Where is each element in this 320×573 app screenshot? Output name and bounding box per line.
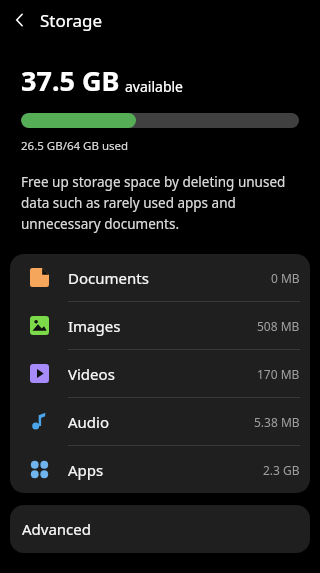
staticText: available bbox=[125, 77, 184, 96]
button[interactable]: Documents bbox=[10, 254, 310, 302]
button[interactable]: Videos bbox=[10, 350, 310, 398]
button[interactable]: Images bbox=[10, 302, 310, 350]
staticText: 2.3 GB bbox=[263, 462, 300, 478]
button[interactable]: Audio bbox=[10, 398, 310, 446]
staticText: 26.5 GB/64 GB used bbox=[21, 138, 129, 154]
staticText: Advanced bbox=[22, 519, 92, 539]
staticText: Images bbox=[68, 316, 121, 336]
button[interactable]: Back bbox=[0, 0, 40, 40]
staticText: 37.5 GB bbox=[21, 62, 120, 99]
staticText: Documents bbox=[68, 268, 149, 288]
staticText: Free up storage space by deleting unused… bbox=[21, 173, 300, 233]
button[interactable]: Advanced bbox=[10, 505, 310, 553]
button[interactable]: Apps bbox=[10, 446, 310, 493]
staticText: Audio bbox=[68, 412, 110, 432]
staticText: Apps bbox=[68, 460, 104, 480]
staticText: 508 MB bbox=[257, 318, 300, 334]
staticText: 5.38 MB bbox=[254, 414, 300, 430]
staticText: 170 MB bbox=[257, 366, 300, 382]
staticText: Videos bbox=[68, 364, 115, 384]
staticText: Storage bbox=[40, 9, 103, 32]
staticText: 0 MB bbox=[271, 270, 300, 286]
